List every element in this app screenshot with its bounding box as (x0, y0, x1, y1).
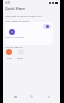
staticText: Quick Share (5, 6, 26, 11)
staticText: 9:41 (5, 1, 11, 5)
button[interactable]: Tablet (17, 49, 24, 60)
staticText: Your device is visible (5, 19, 29, 22)
button[interactable]: Device visibility toggle (43, 24, 51, 29)
staticText: Pixel (7, 57, 12, 60)
staticText: Nearby devices (5, 45, 23, 48)
button[interactable]: Back (11, 92, 20, 101)
staticText: Tablet (17, 57, 24, 60)
button[interactable]: Device visibility toggle (5, 22, 53, 45)
button[interactable]: Home (27, 92, 36, 101)
button[interactable]: Pixel (6, 49, 12, 60)
staticText: Visible to contacts (5, 36, 24, 39)
button[interactable]: Recents (44, 92, 53, 101)
staticText: Send files to people nearby you (5, 14, 42, 17)
